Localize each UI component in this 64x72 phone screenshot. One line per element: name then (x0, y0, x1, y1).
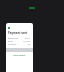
staticText: Payment sent (8, 31, 28, 35)
staticText: View details (13, 54, 26, 57)
button[interactable]: View details (6, 54, 33, 57)
staticText: Amount (8, 43, 17, 46)
button[interactable]: Logo (0, 5, 64, 11)
staticText: Reference (8, 37, 19, 40)
staticText: 12 May (23, 40, 31, 43)
staticText: Date (8, 40, 13, 43)
staticText: 40 (28, 43, 31, 46)
staticText: 4821 (25, 37, 31, 40)
